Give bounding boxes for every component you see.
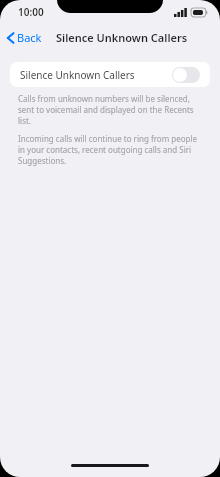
- staticText: Back: [17, 30, 42, 45]
- staticText: Silence Unknown Callers: [20, 68, 135, 82]
- staticText: 10:00: [18, 5, 44, 19]
- staticText: Calls from unknown numbers will be silen…: [18, 93, 202, 126]
- button[interactable]: Silence Unknown Callers toggle: [172, 67, 200, 83]
- button[interactable]: Silence Unknown Callers: [10, 62, 210, 87]
- staticText: Silence Unknown Callers: [56, 30, 188, 45]
- staticText: Incoming calls will continue to ring fro…: [18, 133, 202, 166]
- button[interactable]: Back: [0, 27, 48, 48]
